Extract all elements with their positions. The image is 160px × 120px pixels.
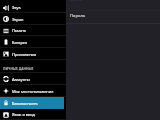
- staticText: Приложения: [12, 52, 37, 57]
- button[interactable]: Пароль: [66, 11, 160, 23]
- staticText: Пароль: [70, 13, 86, 19]
- button[interactable]: Язык и ввод: [0, 109, 66, 120]
- button[interactable]: Память: [0, 25, 66, 36]
- staticText: Безопасность: [12, 101, 38, 106]
- button[interactable]: Аккаунты: [0, 73, 66, 85]
- staticText: ЛИЧНЫЕ ДАННЫЕ: [3, 66, 34, 70]
- staticText: Аккаунты: [12, 77, 30, 82]
- staticText: Звук: [12, 5, 21, 10]
- staticText: Батарея: [12, 40, 28, 45]
- staticText: ЭКРАН: [70, 0, 83, 1]
- staticText: Экран: [12, 17, 24, 22]
- staticText: Язык и ввод: [12, 112, 35, 117]
- button[interactable]: Звук: [0, 2, 66, 13]
- button[interactable]: Безопасность: [0, 97, 66, 109]
- button[interactable]: Экран: [0, 13, 66, 25]
- button[interactable]: Приложения: [0, 48, 66, 60]
- button[interactable]: Батарея: [0, 36, 66, 48]
- staticText: Мое местоположение: [12, 89, 54, 94]
- staticText: Память: [12, 28, 27, 33]
- button[interactable]: Мое местоположение: [0, 85, 66, 97]
